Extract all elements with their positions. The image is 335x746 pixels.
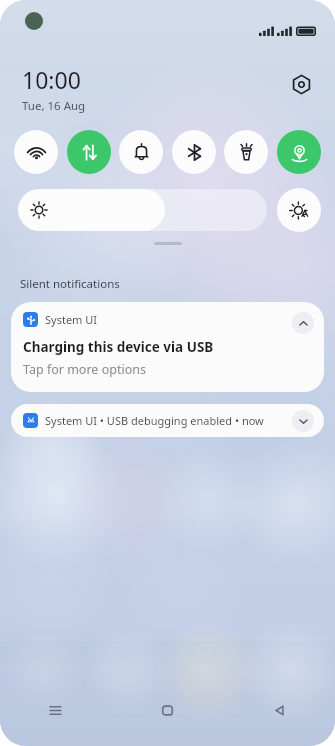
staticText: System UI — [45, 312, 98, 327]
staticText: 10:00 — [22, 64, 81, 95]
button[interactable]: Collapse — [292, 312, 314, 334]
button[interactable]: Back — [257, 688, 301, 732]
staticText: Silent notifications — [20, 276, 120, 292]
button[interactable]: Auto brightness — [277, 188, 321, 232]
button[interactable]: Flashlight — [224, 130, 268, 174]
staticText: System UI • USB debugging enabled • now — [45, 413, 264, 428]
button[interactable]: System UI — [11, 302, 324, 392]
staticText: Tap for more options — [23, 361, 146, 378]
button[interactable]: Brightness — [18, 189, 267, 231]
button[interactable]: Recents — [33, 688, 77, 732]
button[interactable]: System UI • USB debugging enabled • now — [11, 404, 324, 437]
staticText: Charging this device via USB — [23, 338, 214, 356]
button[interactable]: Bluetooth — [172, 130, 216, 174]
staticText: Tue, 16 Aug — [22, 98, 86, 114]
button[interactable]: Ring mode — [119, 130, 163, 174]
button[interactable]: Home — [145, 688, 189, 732]
button[interactable]: Wi-Fi — [14, 130, 58, 174]
button[interactable]: Expand — [292, 410, 314, 432]
button[interactable]: Mobile data — [67, 130, 111, 174]
button[interactable]: Settings — [285, 68, 317, 100]
button[interactable]: Location — [277, 130, 321, 174]
